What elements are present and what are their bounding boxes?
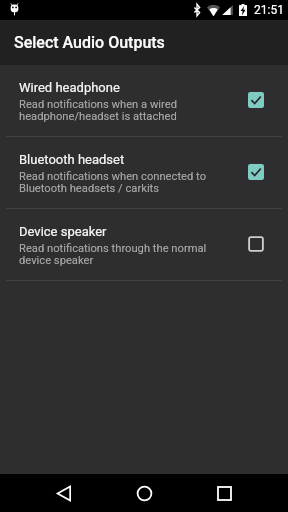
button[interactable]: Back [44, 474, 84, 512]
staticText: Wired headphone [19, 80, 120, 95]
button[interactable]: Enabled [248, 92, 264, 108]
staticText: Read notifications through the normal de… [19, 242, 207, 266]
button[interactable]: Bluetooth headset [0, 137, 288, 208]
button[interactable]: Recents [204, 474, 244, 512]
staticText: Read notifications when connected to Blu… [19, 170, 207, 194]
button[interactable]: Disabled [248, 236, 264, 252]
staticText: Bluetooth headset [19, 152, 125, 167]
staticText: Read notifications when a wired headphon… [19, 98, 177, 122]
button[interactable]: Wired headphone [0, 65, 288, 136]
button[interactable]: Enabled [248, 164, 264, 180]
button[interactable]: Device speaker [0, 209, 288, 280]
button[interactable]: Home [124, 474, 164, 512]
staticText: 21:51 [254, 3, 284, 17]
staticText: Device speaker [19, 224, 107, 239]
staticText: Select Audio Outputs [14, 33, 165, 52]
